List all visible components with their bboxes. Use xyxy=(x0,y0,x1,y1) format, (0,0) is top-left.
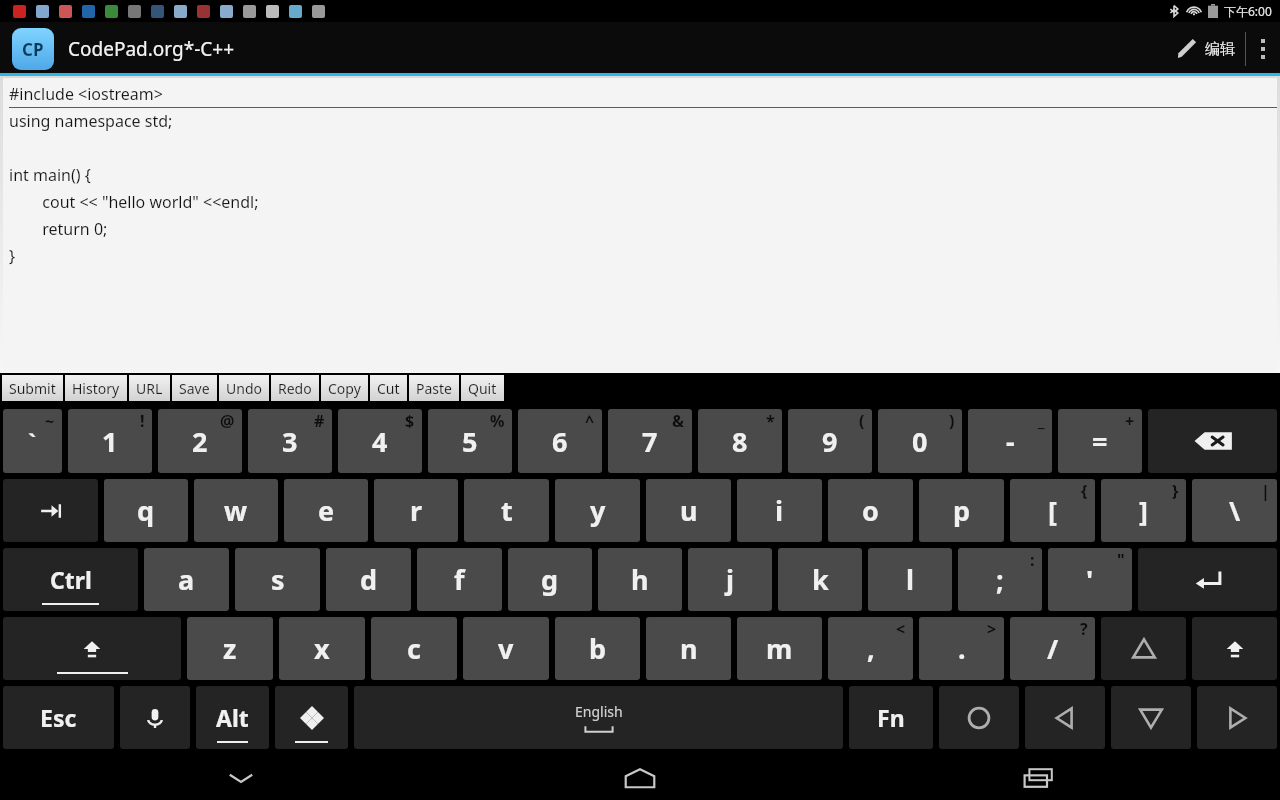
staticText: CodePad.org*-C++ xyxy=(68,36,235,62)
staticText: " xyxy=(1117,549,1125,571)
button[interactable]: / xyxy=(1010,617,1095,680)
staticText: Esc xyxy=(40,702,77,733)
button[interactable]: k xyxy=(778,548,862,611)
button[interactable]: Tab xyxy=(3,479,98,542)
button[interactable]: OK xyxy=(939,686,1019,749)
button[interactable]: Save xyxy=(172,375,217,401)
button[interactable]: j xyxy=(688,548,772,611)
button[interactable]: 0 xyxy=(878,409,962,473)
button[interactable]: d xyxy=(326,548,411,611)
staticText: v xyxy=(498,630,514,667)
button[interactable]: Alt xyxy=(196,686,269,749)
button[interactable]: ' xyxy=(1048,548,1132,611)
button[interactable]: x xyxy=(279,617,365,680)
button[interactable]: Hide keyboard xyxy=(206,756,276,800)
button[interactable]: g xyxy=(508,548,592,611)
button[interactable]: q xyxy=(104,479,188,542)
button[interactable]: 5 xyxy=(428,409,512,473)
button[interactable]: Shift xyxy=(1192,617,1277,680)
staticText: Paste xyxy=(416,379,452,398)
staticText: i xyxy=(775,492,784,529)
button[interactable]: Up xyxy=(1101,617,1186,680)
button[interactable]: 6 xyxy=(518,409,602,473)
button[interactable]: ] xyxy=(1101,479,1186,542)
button[interactable]: 8 xyxy=(698,409,782,473)
button[interactable]: Space xyxy=(354,686,843,749)
staticText: Save xyxy=(179,379,210,398)
button[interactable]: 1 xyxy=(68,409,152,473)
button[interactable]: Enter xyxy=(1138,548,1277,611)
staticText: ( xyxy=(859,410,865,432)
staticText: > xyxy=(987,618,997,640)
button[interactable]: \ xyxy=(1192,479,1277,542)
button[interactable]: 4 xyxy=(338,409,422,473)
staticText: 下午6:00 xyxy=(1224,3,1272,19)
staticText: , xyxy=(867,630,875,667)
button[interactable]: f xyxy=(417,548,502,611)
button[interactable]: ` xyxy=(3,409,62,473)
button[interactable]: w xyxy=(194,479,278,542)
staticText: ? xyxy=(1080,618,1088,640)
button[interactable]: m xyxy=(737,617,822,680)
button[interactable]: Backspace xyxy=(1148,409,1277,473)
staticText: [ xyxy=(1048,492,1057,529)
button[interactable]: - xyxy=(968,409,1052,473)
button[interactable]: e xyxy=(284,479,368,542)
button[interactable]: i xyxy=(737,479,822,542)
button[interactable]: h xyxy=(598,548,682,611)
button[interactable]: Undo xyxy=(219,375,269,401)
button[interactable]: t xyxy=(464,479,549,542)
button[interactable]: [ xyxy=(1010,479,1095,542)
staticText: s xyxy=(271,561,285,598)
button[interactable]: Down xyxy=(1111,686,1191,749)
button[interactable]: Shift xyxy=(3,617,181,680)
button[interactable]: Left xyxy=(1025,686,1105,749)
button[interactable]: 3 xyxy=(248,409,332,473)
button[interactable]: v xyxy=(463,617,549,680)
button[interactable]: a xyxy=(144,548,229,611)
staticText: Submit xyxy=(9,379,56,398)
button[interactable]: Esc xyxy=(3,686,114,749)
staticText: r xyxy=(410,492,423,529)
button[interactable]: Voice input xyxy=(120,686,190,749)
button[interactable]: Redo xyxy=(271,375,319,401)
button[interactable]: Quit xyxy=(461,375,504,401)
staticText: * xyxy=(766,410,775,432)
button[interactable]: u xyxy=(646,479,731,542)
button[interactable]: z xyxy=(187,617,273,680)
button[interactable]: 9 xyxy=(788,409,872,473)
button[interactable]: r xyxy=(374,479,458,542)
button[interactable]: n xyxy=(646,617,731,680)
button[interactable]: y xyxy=(555,479,640,542)
button[interactable]: Home xyxy=(605,756,675,800)
button[interactable]: Switch input method xyxy=(275,686,348,749)
button[interactable]: History xyxy=(65,375,127,401)
button[interactable]: Ctrl xyxy=(3,548,138,611)
button[interactable]: Paste xyxy=(409,375,459,401)
button[interactable]: Cut xyxy=(370,375,407,401)
button[interactable]: b xyxy=(555,617,640,680)
button[interactable]: Copy xyxy=(321,375,368,401)
button[interactable]: p xyxy=(919,479,1004,542)
button[interactable]: Submit xyxy=(2,375,63,401)
staticText: { xyxy=(1081,480,1088,502)
button[interactable]: Recent apps xyxy=(1004,756,1074,800)
staticText: + xyxy=(1125,410,1135,432)
button[interactable]: Right xyxy=(1197,686,1277,749)
button[interactable]: . xyxy=(919,617,1004,680)
button[interactable]: o xyxy=(828,479,913,542)
button[interactable]: s xyxy=(235,548,320,611)
button[interactable]: 2 xyxy=(158,409,242,473)
button[interactable]: c xyxy=(371,617,457,680)
staticText: 1 xyxy=(102,423,118,460)
button[interactable]: = xyxy=(1058,409,1142,473)
button[interactable]: ; xyxy=(958,548,1042,611)
staticText: \ xyxy=(1229,492,1241,529)
button[interactable]: URL xyxy=(129,375,170,401)
button[interactable]: More options xyxy=(1246,22,1280,76)
button[interactable]: , xyxy=(828,617,913,680)
button[interactable]: 7 xyxy=(608,409,692,473)
button[interactable]: 编辑 xyxy=(1165,22,1245,76)
button[interactable]: l xyxy=(868,548,952,611)
button[interactable]: Fn xyxy=(849,686,933,749)
